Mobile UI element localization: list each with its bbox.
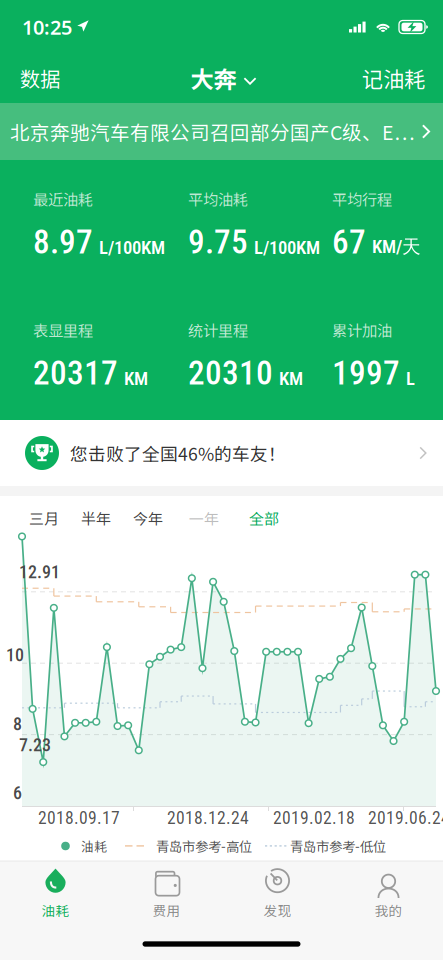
staticText: 北京奔驰汽车有限公司召回部分国产C级、E… bbox=[10, 117, 415, 146]
staticText: KM bbox=[124, 368, 148, 390]
staticText: 7.23 bbox=[19, 734, 51, 756]
staticText: 统计里程 bbox=[188, 319, 248, 341]
button[interactable]: 我的 bbox=[338, 863, 438, 925]
staticText: 今年 bbox=[133, 507, 163, 529]
staticText: L/100KM bbox=[99, 237, 165, 259]
staticText: 6 bbox=[13, 782, 22, 804]
staticText: 8 bbox=[13, 713, 22, 735]
staticText: 我的 bbox=[374, 900, 402, 920]
staticText: 费用 bbox=[152, 900, 180, 920]
staticText: 9.75 bbox=[188, 222, 248, 262]
staticText: 全部 bbox=[249, 507, 279, 529]
staticText: 10 bbox=[6, 644, 24, 666]
button[interactable]: 数据 bbox=[5, 56, 75, 100]
staticText: 三月 bbox=[29, 507, 59, 529]
staticText: 半年 bbox=[81, 507, 111, 529]
staticText: 表显里程 bbox=[33, 319, 93, 341]
staticText: 累计加油 bbox=[332, 319, 392, 341]
button[interactable]: 北京奔驰汽车有限公司召回部分国产C级、E… bbox=[0, 103, 443, 160]
staticText: 青岛市参考-高位 bbox=[156, 836, 252, 856]
staticText: 平均行程 bbox=[332, 188, 392, 210]
button[interactable]: 发现 bbox=[227, 863, 327, 925]
staticText: KM/天 bbox=[372, 235, 421, 258]
staticText: 油耗 bbox=[41, 900, 69, 920]
button[interactable]: 全部 bbox=[0, 0, 443, 960]
button[interactable]: 费用 bbox=[116, 863, 216, 925]
staticText: 67 bbox=[332, 222, 366, 262]
staticText: 10:25 bbox=[22, 14, 72, 40]
button[interactable]: 记油耗 bbox=[349, 56, 437, 100]
staticText: 平均油耗 bbox=[188, 188, 248, 210]
staticText: L bbox=[406, 368, 415, 390]
button[interactable]: 大奔 bbox=[168, 56, 278, 100]
staticText: 数据 bbox=[20, 63, 60, 93]
staticText: 最近油耗 bbox=[33, 188, 93, 210]
button[interactable]: 一年 bbox=[0, 0, 443, 960]
staticText: 1997 bbox=[332, 353, 400, 393]
staticText: 油耗 bbox=[81, 837, 107, 855]
staticText: 发现 bbox=[263, 900, 291, 920]
button[interactable]: 今年 bbox=[0, 0, 443, 960]
staticText: 2018.09.17 bbox=[38, 808, 120, 828]
staticText: KM bbox=[279, 368, 303, 390]
staticText: 记油耗 bbox=[362, 63, 425, 93]
button[interactable]: 您击败了全国46%的车友！ bbox=[0, 420, 443, 486]
staticText: 2019.02.18 bbox=[273, 808, 355, 828]
staticText: 2019.06.24 bbox=[368, 808, 443, 828]
staticText: L/100KM bbox=[254, 237, 320, 259]
button[interactable]: 油耗 bbox=[5, 863, 105, 925]
staticText: 20317 bbox=[33, 353, 118, 393]
button[interactable]: 三月 bbox=[0, 0, 443, 960]
staticText: 大奔 bbox=[190, 61, 236, 95]
staticText: 8.97 bbox=[33, 222, 93, 262]
staticText: 青岛市参考-低位 bbox=[290, 836, 386, 856]
staticText: 2018.12.24 bbox=[167, 808, 249, 828]
staticText: 20310 bbox=[188, 353, 273, 393]
staticText: 您击败了全国46%的车友！ bbox=[70, 440, 286, 466]
button[interactable]: 半年 bbox=[0, 0, 443, 960]
staticText: 12.91 bbox=[19, 561, 60, 583]
staticText: 一年 bbox=[189, 507, 219, 529]
